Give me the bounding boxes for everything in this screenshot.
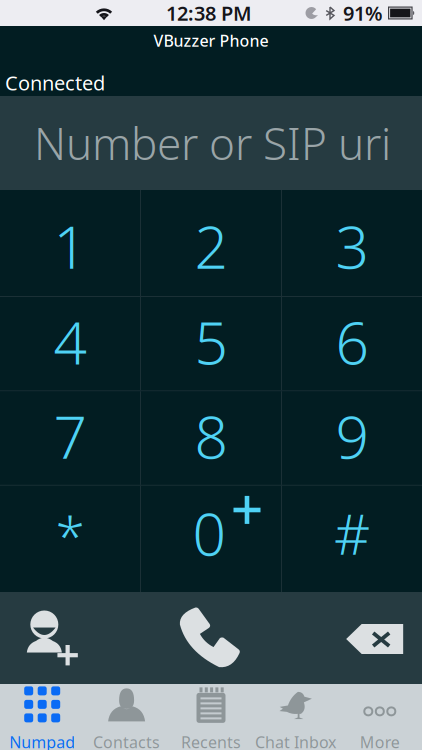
staticText: 12:38 PM (166, 0, 252, 26)
staticText: Connected (5, 69, 105, 96)
staticText: 0 (192, 494, 225, 572)
button[interactable]: Numpad (0, 684, 84, 750)
staticText: 9 (335, 397, 368, 475)
button[interactable]: 1 (0, 190, 140, 296)
button[interactable]: Call (141, 592, 281, 684)
button[interactable]: 5 (141, 297, 281, 390)
staticText: Numpad (9, 731, 75, 750)
staticText: * (55, 500, 84, 571)
button[interactable]: More (338, 684, 422, 750)
button[interactable]: 6 (282, 297, 422, 390)
staticText: More (360, 731, 400, 750)
staticText: 6 (335, 303, 368, 381)
staticText: Number or SIP uri (34, 114, 391, 172)
button[interactable]: 7 (0, 391, 140, 485)
button[interactable]: 3 (282, 190, 422, 296)
staticText: # (334, 496, 370, 570)
button[interactable]: # (282, 486, 422, 592)
staticText: 5 (194, 303, 227, 381)
staticText: 91% (343, 0, 383, 26)
staticText: Contacts (93, 731, 160, 750)
button[interactable]: Add contact (0, 592, 141, 684)
staticText: 4 (53, 303, 86, 381)
staticText: 3 (335, 207, 368, 285)
button[interactable]: 0 (141, 486, 281, 592)
button[interactable]: Delete (281, 592, 422, 684)
staticText: Chat Inbox (255, 731, 336, 750)
button[interactable]: 9 (282, 391, 422, 485)
button[interactable]: 4 (0, 297, 140, 390)
staticText: 8 (194, 397, 227, 475)
button[interactable]: * (0, 486, 140, 592)
button[interactable]: Chat Inbox (253, 684, 338, 750)
staticText: Recents (181, 731, 241, 750)
staticText: VBuzzer Phone (153, 30, 268, 51)
staticText: 1 (53, 207, 86, 285)
staticText: 2 (194, 207, 227, 285)
button[interactable]: Recents (169, 684, 253, 750)
button[interactable]: 2 (141, 190, 281, 296)
button[interactable]: 8 (141, 391, 281, 485)
staticText: 7 (53, 397, 86, 475)
button[interactable]: Contacts (84, 684, 169, 750)
